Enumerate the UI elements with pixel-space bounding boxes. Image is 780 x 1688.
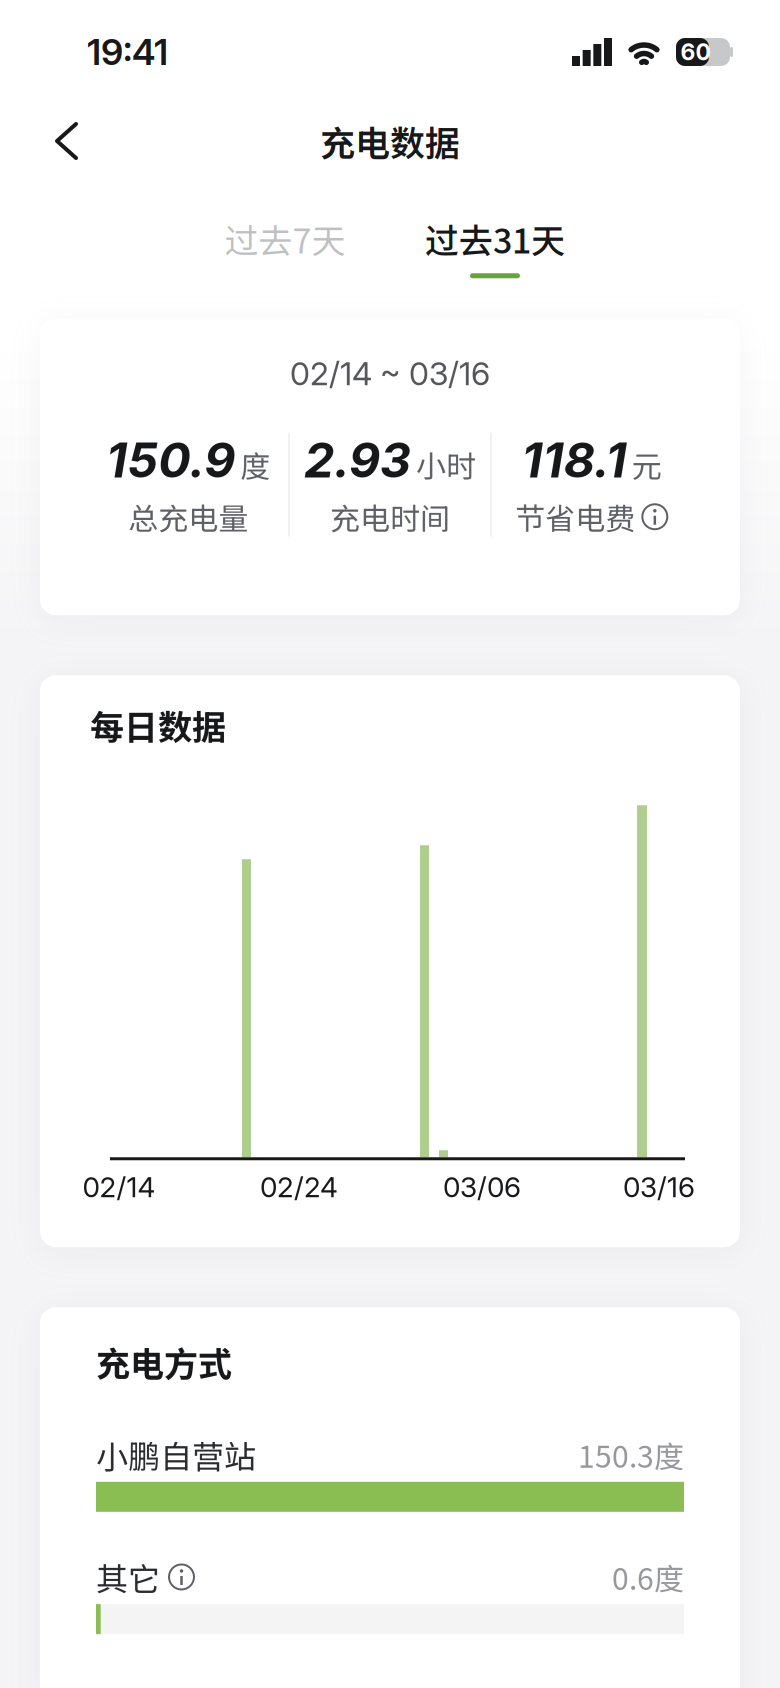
button[interactable]: Info bbox=[641, 503, 668, 530]
staticText: 150.9 bbox=[106, 431, 235, 489]
staticText: 02/14 ~ 03/16 bbox=[290, 354, 490, 393]
button[interactable]: 过去31天 bbox=[390, 214, 600, 278]
staticText: 充电方式 bbox=[96, 1337, 232, 1386]
staticText: 充电时间 bbox=[330, 495, 450, 538]
staticText: 小鹏自营站 bbox=[96, 1431, 256, 1478]
staticText: 19:41 bbox=[87, 30, 168, 74]
button[interactable]: 过去7天 bbox=[180, 214, 390, 278]
staticText: 0.6度 bbox=[612, 1555, 684, 1599]
staticText: 03/06 bbox=[443, 1170, 521, 1204]
staticText: 150.3度 bbox=[578, 1433, 684, 1476]
staticText: 节省电费 bbox=[515, 495, 635, 538]
staticText: 60 bbox=[680, 38, 710, 66]
staticText: 02/24 bbox=[260, 1170, 338, 1204]
staticText: 2.93 bbox=[304, 431, 411, 489]
staticText: 过去31天 bbox=[425, 214, 565, 263]
staticText: 03/16 bbox=[623, 1170, 695, 1204]
staticText: 118.1 bbox=[522, 431, 627, 489]
staticText: 充电数据 bbox=[320, 116, 460, 166]
staticText: 过去7天 bbox=[224, 214, 345, 263]
staticText: 小时 bbox=[416, 443, 476, 486]
button[interactable]: Info bbox=[168, 1563, 195, 1590]
staticText: 总充电量 bbox=[128, 495, 248, 538]
staticText: 其它 bbox=[96, 1554, 160, 1600]
staticText: 元 bbox=[632, 443, 662, 486]
staticText: 02/14 bbox=[82, 1170, 155, 1204]
button[interactable]: Back bbox=[0, 116, 76, 166]
staticText: 度 bbox=[240, 443, 270, 486]
staticText: 每日数据 bbox=[90, 700, 226, 749]
